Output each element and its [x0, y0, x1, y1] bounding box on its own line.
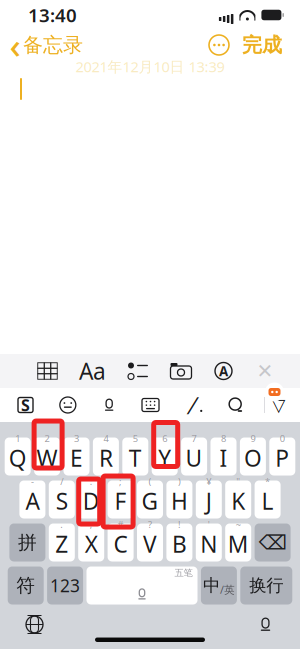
staticText: C	[114, 529, 128, 559]
staticText: ,	[90, 518, 93, 531]
button[interactable]: !	[166, 523, 192, 561]
button[interactable]: 更多	[204, 30, 234, 60]
staticText: U	[186, 443, 203, 473]
button[interactable]: 关闭	[250, 362, 280, 380]
staticText: O	[244, 443, 262, 473]
staticText: ⁄	[191, 389, 194, 421]
button[interactable]: 4	[93, 437, 119, 475]
staticText: 中	[203, 575, 220, 596]
staticText: Q	[9, 443, 27, 473]
button[interactable]: 5	[122, 437, 148, 475]
button[interactable]: 空格	[86, 566, 197, 604]
button[interactable]: 符	[8, 566, 44, 604]
staticText: 2021年12月10日 13:39	[75, 57, 224, 76]
staticText: Aa	[79, 356, 106, 386]
button[interactable]: :	[78, 480, 104, 518]
button[interactable]: 1	[5, 437, 31, 475]
staticText: 1	[15, 432, 20, 445]
button[interactable]: 清单	[122, 362, 154, 380]
staticText: K	[231, 486, 245, 516]
staticText: 7	[192, 432, 197, 445]
button[interactable]: 文字格式	[74, 362, 111, 380]
staticText: 0	[280, 432, 285, 445]
staticText: A	[25, 486, 39, 516]
staticText: #	[118, 518, 124, 531]
button[interactable]: ~	[225, 523, 251, 561]
button[interactable]: "	[225, 480, 251, 518]
staticText: ~	[236, 518, 241, 531]
staticText: '	[208, 518, 210, 531]
button[interactable]: 0	[269, 437, 295, 475]
staticText: Y	[158, 443, 171, 473]
button[interactable]: 123	[47, 566, 83, 604]
staticText: 6	[162, 432, 167, 445]
button[interactable]: 搜索	[222, 396, 249, 414]
staticText: E	[70, 443, 83, 473]
button[interactable]: 收起键盘	[265, 396, 292, 414]
button[interactable]: (	[137, 480, 163, 518]
staticText: )	[178, 475, 181, 488]
staticText: Z	[55, 529, 68, 559]
staticText: .	[60, 518, 63, 531]
button[interactable]: 键盘布局	[137, 396, 164, 414]
button[interactable]: *	[255, 480, 281, 518]
staticText: ⌫	[259, 531, 287, 554]
staticText: "	[236, 475, 240, 488]
button[interactable]: 2	[34, 437, 60, 475]
staticText: 5	[133, 432, 138, 445]
staticText: 2	[45, 432, 50, 445]
button[interactable]: 3	[63, 437, 89, 475]
button[interactable]: '	[196, 523, 222, 561]
button[interactable]: ?	[137, 523, 163, 561]
button[interactable]: ‹	[0, 28, 83, 62]
button[interactable]: 搜狗输入法	[12, 396, 39, 414]
button[interactable]: ;	[108, 480, 134, 518]
staticText: I	[219, 443, 227, 473]
staticText: 13:40	[28, 3, 77, 27]
button[interactable]: 表情	[54, 396, 81, 414]
button[interactable]: 9	[240, 437, 266, 475]
button[interactable]: 6	[152, 437, 178, 475]
button[interactable]: 换行	[240, 566, 292, 604]
button[interactable]: 中英文切换	[201, 566, 237, 604]
button[interactable]: 8	[210, 437, 236, 475]
button[interactable]: 删除	[255, 523, 291, 561]
staticText: M	[228, 529, 249, 559]
staticText: :	[90, 475, 93, 488]
staticText: S	[56, 486, 68, 516]
staticText: 换行	[249, 575, 283, 596]
staticText: F	[115, 486, 127, 516]
staticText: *	[265, 475, 270, 488]
button[interactable]: 标记	[208, 362, 239, 380]
staticText: J	[206, 486, 212, 516]
staticText: -	[31, 475, 34, 488]
staticText: 4	[103, 432, 108, 445]
button[interactable]: 完成	[234, 28, 290, 62]
button[interactable]: /	[49, 480, 75, 518]
staticText: G	[141, 486, 158, 516]
button[interactable]: 拼	[9, 523, 45, 561]
staticText: P	[275, 443, 289, 473]
button[interactable]: 表格	[32, 362, 63, 380]
staticText: ?	[148, 518, 152, 531]
staticText: 拼	[18, 531, 37, 554]
button[interactable]: -	[19, 480, 45, 518]
staticText: ‹	[9, 22, 20, 68]
button[interactable]: )	[166, 480, 192, 518]
staticText: 完成	[242, 33, 282, 57]
button[interactable]: 切换键盘	[18, 608, 51, 641]
staticText: A	[219, 362, 228, 380]
button[interactable]: #	[108, 523, 134, 561]
staticText: !	[178, 518, 181, 531]
button[interactable]: ¥	[196, 480, 222, 518]
button[interactable]: 手写	[179, 396, 206, 414]
button[interactable]: 相机	[165, 362, 197, 380]
staticText: /英	[220, 582, 235, 597]
staticText: 8	[221, 432, 226, 445]
button[interactable]: 7	[181, 437, 207, 475]
staticText: R	[99, 443, 113, 473]
button[interactable]: .	[49, 523, 75, 561]
button[interactable]: ,	[78, 523, 104, 561]
button[interactable]: 听写	[249, 608, 282, 641]
button[interactable]: 语音输入	[97, 396, 122, 413]
